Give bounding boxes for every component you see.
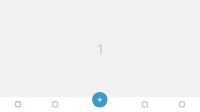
button[interactable]: Notes (0, 97, 36, 112)
button[interactable]: Labels (127, 97, 163, 112)
staticText: 1 (96, 38, 105, 58)
button[interactable]: Add (92, 92, 108, 108)
button[interactable]: Reminders (37, 97, 73, 112)
button[interactable]: Settings (164, 97, 200, 112)
